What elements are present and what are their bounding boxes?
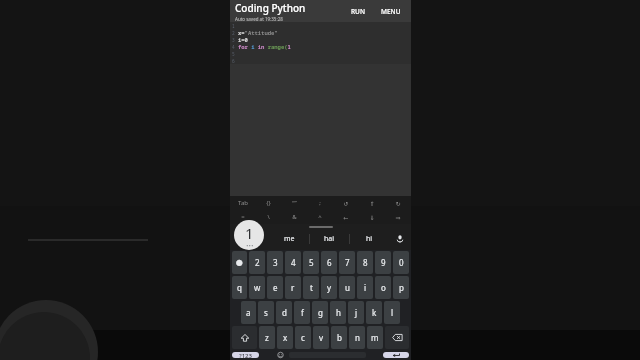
button[interactable]: Emoji: [274, 352, 287, 358]
button[interactable]: x: [277, 326, 293, 349]
staticText: w: [254, 282, 261, 293]
staticText: y: [327, 282, 332, 293]
button[interactable]: t: [303, 276, 319, 299]
button[interactable]: i: [357, 276, 373, 299]
button[interactable]: “”: [281, 196, 307, 210]
staticText: x: [283, 332, 288, 343]
button[interactable]: y: [321, 276, 337, 299]
button[interactable]: Backspace: [385, 326, 409, 349]
button[interactable]: 4: [285, 251, 301, 274]
staticText: o: [381, 282, 386, 293]
button[interactable]: e: [267, 276, 283, 299]
button[interactable]: ←: [333, 210, 359, 224]
staticText: me: [284, 234, 295, 244]
button[interactable]: r: [285, 276, 301, 299]
button[interactable]: b: [331, 326, 347, 349]
staticText: n: [355, 332, 360, 343]
button[interactable]: Shift: [232, 326, 257, 349]
button[interactable]: ⇓: [359, 210, 385, 224]
staticText: 0: [399, 257, 404, 268]
button[interactable]: {}: [255, 196, 281, 210]
button[interactable]: \: [255, 210, 281, 224]
button[interactable]: ●: [232, 251, 247, 274]
staticText: 6: [232, 58, 238, 64]
staticText: a: [246, 307, 251, 318]
staticText: 4: [291, 257, 296, 268]
button[interactable]: n: [349, 326, 365, 349]
button[interactable]: s: [258, 301, 274, 324]
button[interactable]: 5: [303, 251, 319, 274]
button[interactable]: l: [384, 301, 400, 324]
staticText: 2: [232, 30, 238, 36]
button[interactable]: p: [393, 276, 409, 299]
staticText: RUN: [351, 7, 365, 16]
button[interactable]: &: [281, 210, 307, 224]
staticText: 4: [232, 44, 238, 50]
staticText: j: [355, 307, 358, 318]
button[interactable]: 0: [393, 251, 409, 274]
button[interactable]: q: [232, 276, 247, 299]
button[interactable]: 7: [339, 251, 355, 274]
button[interactable]: z: [259, 326, 275, 349]
button[interactable]: d: [276, 301, 292, 324]
button[interactable]: c: [295, 326, 311, 349]
button[interactable]: Voice input: [389, 228, 411, 250]
button[interactable]: o: [375, 276, 391, 299]
staticText: d: [282, 307, 287, 318]
staticText: b: [337, 332, 342, 343]
button[interactable]: 6: [321, 251, 337, 274]
staticText: for i in range(1: [238, 43, 291, 50]
button[interactable]: hi: [350, 228, 389, 250]
button[interactable]: =: [230, 210, 255, 224]
button[interactable]: 2: [249, 251, 265, 274]
button[interactable]: 9: [375, 251, 391, 274]
staticText: &: [292, 213, 297, 221]
staticText: hi: [366, 234, 373, 244]
button[interactable]: f: [294, 301, 310, 324]
button[interactable]: hai: [310, 228, 349, 250]
staticText: ⇑: [369, 200, 375, 207]
button[interactable]: 8: [357, 251, 373, 274]
staticText: q: [237, 282, 242, 293]
button[interactable]: ^: [307, 210, 333, 224]
staticText: l: [391, 307, 394, 318]
button[interactable]: a: [241, 301, 256, 324]
button[interactable]: v: [313, 326, 329, 349]
staticText: \: [267, 213, 270, 221]
staticText: m: [371, 332, 379, 343]
button[interactable]: Enter: [383, 352, 409, 358]
button[interactable]: ⇒: [385, 210, 411, 224]
staticText: 6: [327, 257, 332, 268]
staticText: 1: [232, 23, 238, 29]
button[interactable]: ↺: [333, 196, 359, 210]
button[interactable]: ↻: [385, 196, 411, 210]
staticText: ?123: [239, 352, 252, 358]
button[interactable]: u: [339, 276, 355, 299]
staticText: Coding Python: [235, 1, 306, 15]
button[interactable]: MENU: [377, 3, 405, 20]
staticText: ←: [343, 214, 349, 221]
button[interactable]: ?123: [232, 352, 259, 358]
button[interactable]: k: [366, 301, 382, 324]
button[interactable]: ;: [307, 196, 333, 210]
button[interactable]: 3: [267, 251, 283, 274]
button[interactable]: g: [312, 301, 328, 324]
button[interactable]: RUN: [347, 3, 369, 20]
button[interactable]: h: [330, 301, 346, 324]
staticText: r: [291, 282, 295, 293]
button[interactable]: me: [270, 228, 309, 250]
staticText: ↻: [395, 200, 401, 207]
button[interactable]: w: [249, 276, 265, 299]
staticText: ^: [318, 213, 322, 221]
button[interactable]: j: [348, 301, 364, 324]
button[interactable]: ⇑: [359, 196, 385, 210]
button[interactable]: m: [367, 326, 383, 349]
button[interactable]: Tab: [230, 196, 255, 210]
staticText: 5: [232, 51, 238, 57]
staticText: e: [273, 282, 278, 293]
staticText: 8: [363, 257, 368, 268]
